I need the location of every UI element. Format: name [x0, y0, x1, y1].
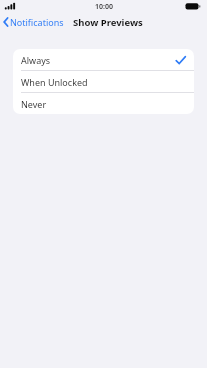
- staticText: Notifications: [10, 16, 64, 28]
- button[interactable]: Always: [13, 49, 194, 70]
- staticText: Never: [21, 98, 47, 110]
- staticText: Show Previews: [73, 16, 143, 29]
- button[interactable]: Never: [13, 93, 194, 114]
- staticText: When Unlocked: [21, 76, 88, 88]
- staticText: 10:00: [95, 2, 113, 12]
- staticText: Always: [21, 54, 51, 66]
- button[interactable]: Notifications: [0, 13, 64, 31]
- button[interactable]: When Unlocked: [13, 71, 194, 92]
